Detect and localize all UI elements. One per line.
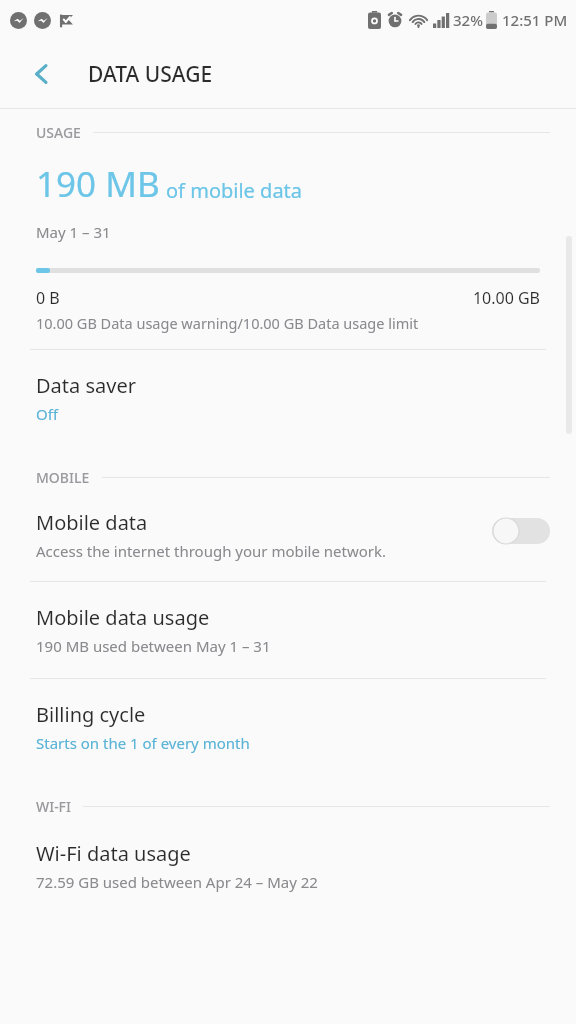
button[interactable]: Back <box>18 50 66 98</box>
button[interactable]: Data saver <box>0 350 576 446</box>
staticText: DATA USAGE <box>88 60 213 89</box>
button[interactable]: Wi-Fi data usage <box>0 816 576 908</box>
button[interactable]: Billing cycle <box>0 679 576 775</box>
staticText: MOBILE <box>36 468 90 487</box>
staticText: 190 MB <box>36 160 160 208</box>
staticText: Data saver <box>36 372 136 399</box>
staticText: USAGE <box>36 123 81 142</box>
button[interactable]: Mobile data usage <box>0 582 576 678</box>
staticText: 32% <box>453 10 483 30</box>
staticText: 0 B <box>36 287 60 309</box>
staticText: WI-FI <box>36 797 71 816</box>
button[interactable]: Mobile data <box>0 487 576 581</box>
staticText: Billing cycle <box>36 701 146 728</box>
staticText: 190 MB used between May 1 – 31 <box>36 636 271 656</box>
staticText: Starts on the 1 of every month <box>36 733 250 753</box>
staticText: Mobile data usage <box>36 604 210 631</box>
staticText: Wi-Fi data usage <box>36 840 191 867</box>
staticText: Access the internet through your mobile … <box>36 541 387 561</box>
staticText: 10.00 GB Data usage warning/10.00 GB Dat… <box>36 313 419 333</box>
staticText: 72.59 GB used between Apr 24 – May 22 <box>36 872 318 892</box>
staticText: Mobile data <box>36 509 148 536</box>
staticText: of mobile data <box>166 177 303 204</box>
staticText: 12:51 PM <box>502 10 568 30</box>
staticText: Off <box>36 404 59 424</box>
staticText: 10.00 GB <box>472 287 540 309</box>
staticText: May 1 – 31 <box>36 222 111 242</box>
